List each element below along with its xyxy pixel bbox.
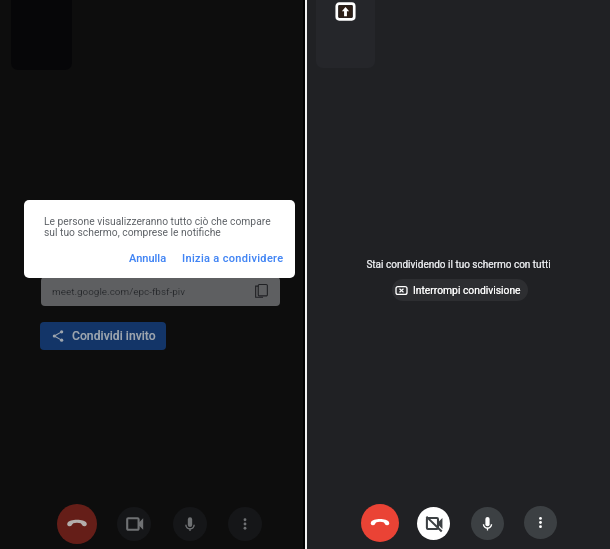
staticText: Le persone visualizzeranno tutto ciò che… [44,215,271,239]
button[interactable]: End call [57,504,97,544]
button[interactable]: More options [228,507,262,541]
staticText: Annulla [129,252,167,265]
button[interactable]: Turn on camera [417,507,450,540]
button[interactable]: End call [361,504,399,542]
button[interactable]: Mute microphone [173,507,207,541]
staticText: Interrompi condivisione [413,284,521,296]
staticText: Inizia a condividere [182,252,284,265]
staticText: Stai condividendo il tuo schermo con tut… [366,259,551,271]
button[interactable]: Annulla [123,248,173,269]
button[interactable]: Inizia a condividere [176,248,290,269]
button[interactable]: More options [524,506,557,539]
button[interactable]: Condividi invito [40,322,166,350]
staticText: Condividi invito [72,329,156,343]
button[interactable]: Interrompi condivisione [392,279,528,301]
button[interactable]: Turn off camera [117,507,151,541]
button[interactable]: Mute microphone [471,507,504,540]
staticText: meet.google.com/epc-fbsf-piv [52,286,185,298]
button[interactable]: meet.google.com/epc-fbsf-piv [41,277,280,306]
